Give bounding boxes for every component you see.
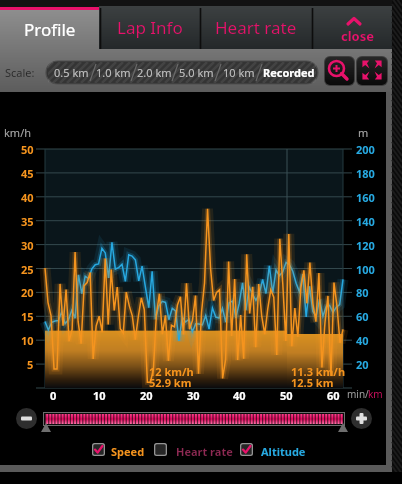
staticText: m (358, 125, 369, 140)
staticText: 12.5 km (291, 375, 334, 390)
staticText: Speed (111, 444, 145, 459)
staticText: 5 (27, 357, 34, 372)
staticText: 10 (21, 333, 34, 348)
staticText: 15 (21, 309, 34, 324)
button[interactable]: 10 km (218, 62, 259, 83)
staticText: 2.0 km (137, 65, 172, 80)
button[interactable]: Heart rate (153, 442, 229, 458)
button[interactable]: Heart rate (201, 6, 311, 49)
staticText: Profile (24, 18, 76, 41)
staticText: 80 (356, 285, 369, 300)
button[interactable]: 1.0 km (93, 62, 134, 83)
staticText: 100 (356, 262, 375, 277)
staticText: 12 km/h (149, 364, 194, 379)
staticText: 20 (140, 388, 153, 403)
staticText: 0.5 km (54, 65, 89, 80)
staticText: Lap Info (117, 16, 183, 39)
button[interactable]: Profile (0, 10, 99, 49)
button[interactable]: Zoom in (325, 57, 354, 85)
staticText: 20 (356, 357, 369, 372)
staticText: 50 (21, 142, 34, 157)
staticText: 120 (356, 238, 375, 253)
staticText: close (341, 27, 374, 45)
staticText: 10 km (223, 65, 255, 80)
staticText: Heart rate (176, 444, 233, 459)
staticText: Altitude (261, 444, 306, 459)
button[interactable]: Lap Info (101, 6, 199, 49)
button[interactable]: Zoom out (16, 408, 37, 429)
button[interactable]: 0.5 km (50, 62, 93, 83)
staticText: 140 (356, 214, 375, 229)
staticText: 11.3 km/h (291, 364, 346, 379)
staticText: Heart rate (215, 16, 297, 39)
staticText: 40 (21, 190, 34, 205)
staticText: Scale: (5, 65, 35, 80)
staticText: km/h (4, 125, 32, 140)
staticText: 10 (93, 388, 106, 403)
staticText: 40 (233, 388, 246, 403)
staticText: 180 (356, 166, 375, 181)
staticText: 60 (356, 309, 369, 324)
button[interactable]: Close (313, 6, 402, 49)
staticText: 5.0 km (179, 65, 214, 80)
staticText: 160 (356, 190, 375, 205)
button[interactable]: Zoom in (351, 408, 372, 429)
staticText: 50 (280, 388, 293, 403)
button[interactable]: 2.0 km (134, 62, 175, 83)
button[interactable]: 5.0 km (175, 62, 218, 83)
button[interactable]: Speed (91, 442, 149, 458)
staticText: 30 (187, 388, 200, 403)
staticText: 0 (50, 388, 57, 403)
staticText: 35 (21, 214, 34, 229)
button[interactable]: Full screen (357, 57, 387, 85)
staticText: km (368, 387, 383, 401)
staticText: 30 (21, 238, 34, 253)
staticText: 200 (356, 142, 375, 157)
staticText: min/ (347, 387, 369, 401)
staticText: 60 (327, 388, 340, 403)
staticText: 25 (21, 262, 34, 277)
staticText: 40 (356, 333, 369, 348)
staticText: 52.9 km (149, 375, 192, 390)
staticText: 20 (21, 285, 34, 300)
staticText: 45 (21, 166, 34, 181)
staticText: 1.0 km (96, 65, 131, 80)
button[interactable]: Recorded (259, 62, 318, 83)
button[interactable]: Altitude (239, 442, 303, 458)
staticText: Recorded (263, 65, 315, 80)
